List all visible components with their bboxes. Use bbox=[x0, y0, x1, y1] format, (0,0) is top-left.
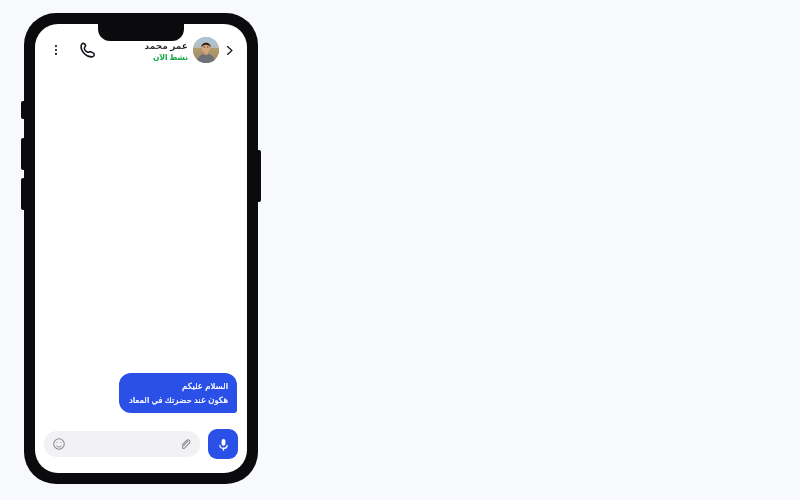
button[interactable]: Profile photo bbox=[193, 37, 219, 63]
button[interactable]: عمر محمد bbox=[144, 37, 237, 63]
other: Attach file bbox=[178, 437, 192, 451]
button[interactable]: السلام عليكم bbox=[119, 373, 237, 413]
button[interactable]: Emoji bbox=[44, 431, 200, 457]
staticText: نشط الآن bbox=[153, 52, 188, 62]
button[interactable]: Call bbox=[75, 38, 99, 62]
other: Open profile bbox=[221, 42, 237, 58]
staticText: هكون عند حضرتك في المعاد bbox=[128, 394, 228, 406]
other: Emoji bbox=[52, 437, 66, 451]
button[interactable]: More options bbox=[45, 39, 67, 61]
staticText: عمر محمد bbox=[144, 39, 188, 51]
staticText: السلام عليكم bbox=[182, 380, 228, 392]
button[interactable]: Record voice message bbox=[208, 429, 238, 459]
